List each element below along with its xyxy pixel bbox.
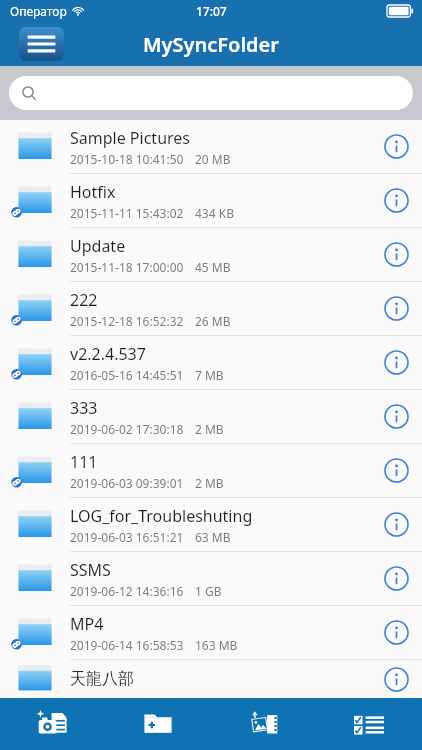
staticText: 2019-06-03 09:39:01 [70,475,184,491]
button[interactable]: 333 [0,390,422,443]
staticText: Sample Pictures [70,127,191,149]
staticText: 7 MB [195,367,224,383]
staticText: LOG_for_Troubleshuting [70,505,253,527]
button[interactable]: Update [0,228,422,281]
staticText: 2 MB [195,475,224,491]
button[interactable]: Upload media [210,698,316,750]
button[interactable]: Info [370,120,422,173]
button[interactable]: v2.2.4.537 [0,336,422,389]
staticText: 26 MB [195,313,231,329]
staticText: SSMS [70,559,111,581]
staticText: 2016-05-16 14:45:51 [70,367,184,383]
staticText: 333 [70,397,98,419]
button[interactable]: Info [370,174,422,227]
button[interactable]: 222 [0,282,422,335]
button[interactable]: Take photo [0,698,105,750]
button[interactable]: Info [370,444,422,497]
button[interactable]: Info [370,336,422,389]
button[interactable]: Info [370,228,422,281]
button[interactable]: Select items [316,698,422,750]
button[interactable]: Menu [19,27,64,61]
staticText: 2015-10-18 10:41:50 [70,151,184,167]
button[interactable]: Info [370,552,422,605]
staticText: Hotfix [70,181,116,203]
button[interactable]: Info [370,660,422,698]
button[interactable]: MP4 [0,606,422,659]
button[interactable]: New folder [105,698,210,750]
staticText: 2019-06-02 17:30:18 [70,421,184,437]
staticText: 20 MB [195,151,231,167]
staticText: v2.2.4.537 [70,343,146,365]
staticText: 2019-06-03 16:51:21 [70,529,184,545]
staticText: 2015-11-11 15:43:02 [70,205,184,221]
staticText: Оператор [10,3,67,19]
staticText: 天龍八部 [70,669,134,689]
button[interactable]: Info [370,282,422,335]
button[interactable]: Hotfix [0,174,422,227]
staticText: 1 GB [195,583,222,599]
staticText: 2019-06-12 14:36:16 [70,583,184,599]
staticText: 2015-11-18 17:00:00 [70,259,184,275]
staticText: 222 [70,289,98,311]
staticText: 434 KB [195,205,234,221]
staticText: 2019-06-14 16:58:53 [70,637,184,653]
button[interactable]: 111 [0,444,422,497]
staticText: 45 MB [195,259,231,275]
button[interactable]: Sample Pictures [0,120,422,173]
staticText: 63 MB [195,529,231,545]
staticText: 17:07 [196,3,227,19]
button[interactable]: Info [370,606,422,659]
button[interactable]: 天龍八部 [0,660,422,698]
button[interactable] [9,76,413,110]
staticText: 2015-12-18 16:52:32 [70,313,184,329]
button[interactable]: SSMS [0,552,422,605]
button[interactable]: LOG_for_Troubleshuting [0,498,422,551]
staticText: Update [70,235,126,257]
staticText: 2 MB [195,421,224,437]
staticText: MP4 [70,613,104,635]
staticText: MySyncFolder [143,31,279,58]
button[interactable]: Info [370,390,422,443]
staticText: 163 MB [195,637,238,653]
button[interactable]: Info [370,498,422,551]
staticText: 111 [70,451,98,473]
